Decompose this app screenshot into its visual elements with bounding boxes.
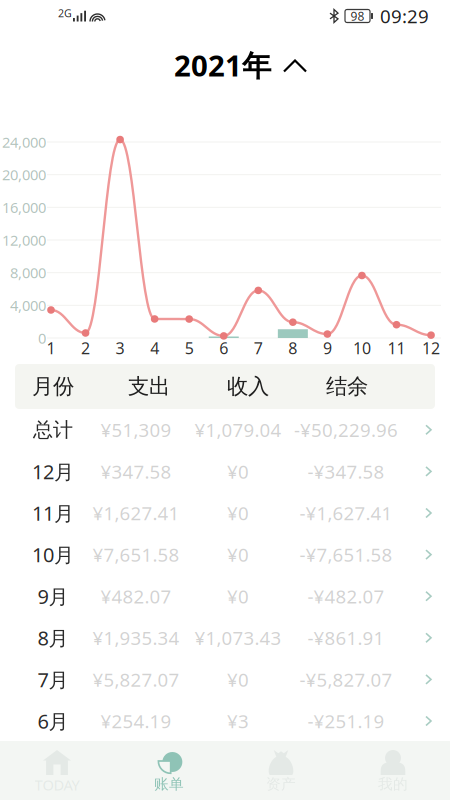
button[interactable]: 6月 bbox=[15, 700, 435, 742]
staticText: ¥0 bbox=[227, 542, 249, 567]
staticText: 总计 bbox=[33, 417, 73, 442]
staticText: 98 bbox=[350, 8, 364, 24]
staticText: 8月 bbox=[37, 624, 68, 651]
staticText: 6 bbox=[219, 337, 228, 359]
staticText: -¥861.91 bbox=[307, 625, 384, 650]
staticText: 11月 bbox=[32, 500, 74, 526]
staticText: ¥1,627.41 bbox=[92, 501, 179, 525]
staticText: 8,000 bbox=[10, 263, 46, 282]
staticText: 4,000 bbox=[10, 296, 46, 315]
staticText: 12 bbox=[422, 337, 440, 359]
staticText: 支出 bbox=[128, 373, 170, 400]
staticText: 结余 bbox=[326, 373, 368, 400]
staticText: 5 bbox=[185, 337, 194, 359]
button[interactable]: 资产 bbox=[225, 741, 337, 800]
staticText: 账单 bbox=[154, 775, 184, 793]
button[interactable]: 我的 bbox=[337, 741, 449, 800]
button[interactable]: 11月 bbox=[15, 492, 435, 534]
staticText: ¥1,935.34 bbox=[92, 625, 179, 650]
staticText: ¥347.58 bbox=[100, 459, 171, 484]
staticText: 7月 bbox=[37, 666, 68, 693]
staticText: ¥482.07 bbox=[100, 584, 171, 609]
staticText: -¥251.19 bbox=[307, 709, 384, 733]
button[interactable]: 10月 bbox=[15, 534, 435, 575]
button[interactable]: TODAY bbox=[1, 741, 113, 800]
staticText: 1 bbox=[46, 337, 55, 359]
staticText: ¥0 bbox=[227, 459, 249, 484]
staticText: 月份 bbox=[32, 373, 74, 400]
button[interactable]: 7月 bbox=[15, 659, 435, 700]
staticText: -¥1,627.41 bbox=[299, 501, 392, 525]
staticText: 资产 bbox=[266, 775, 296, 793]
staticText: 12月 bbox=[32, 458, 74, 485]
staticText: ¥1,079.04 bbox=[194, 417, 281, 442]
staticText: 2G bbox=[58, 6, 72, 20]
staticText: -¥5,827.07 bbox=[299, 667, 392, 692]
staticText: 11 bbox=[387, 337, 405, 359]
staticText: 8 bbox=[288, 337, 297, 359]
staticText: ¥5,827.07 bbox=[92, 667, 179, 692]
staticText: ¥254.19 bbox=[100, 709, 171, 733]
staticText: 20,000 bbox=[2, 165, 46, 184]
button[interactable]: 总计 bbox=[15, 409, 435, 451]
staticText: -¥7,651.58 bbox=[299, 542, 392, 567]
staticText: ¥51,309 bbox=[100, 417, 171, 442]
staticText: -¥347.58 bbox=[307, 459, 384, 484]
staticText: ¥0 bbox=[227, 667, 249, 692]
button[interactable]: 12月 bbox=[15, 451, 435, 492]
staticText: 收入 bbox=[227, 373, 269, 400]
staticText: 9 bbox=[323, 337, 332, 359]
staticText: 09:29 bbox=[380, 4, 429, 28]
staticText: 12,000 bbox=[2, 230, 46, 250]
button[interactable]: 8月 bbox=[15, 617, 435, 659]
staticText: ¥7,651.58 bbox=[92, 542, 179, 567]
staticText: 9月 bbox=[37, 583, 68, 609]
staticText: ¥1,073.43 bbox=[194, 625, 281, 650]
staticText: 6月 bbox=[37, 708, 68, 734]
button[interactable]: 账单 bbox=[113, 741, 225, 800]
staticText: 3 bbox=[116, 337, 125, 359]
staticText: 0 bbox=[38, 328, 46, 348]
staticText: 2 bbox=[81, 337, 90, 359]
staticText: 16,000 bbox=[2, 198, 46, 217]
staticText: 7 bbox=[254, 337, 263, 359]
staticText: ¥3 bbox=[227, 709, 249, 733]
staticText: ¥0 bbox=[227, 584, 249, 609]
staticText: 10月 bbox=[32, 541, 74, 568]
staticText: 24,000 bbox=[2, 132, 46, 152]
staticText: 2021年 bbox=[174, 45, 271, 84]
staticText: 4 bbox=[150, 337, 159, 359]
staticText: -¥482.07 bbox=[307, 584, 384, 609]
staticText: 10 bbox=[353, 337, 371, 359]
button[interactable]: 9月 bbox=[15, 575, 435, 617]
staticText: ¥0 bbox=[227, 501, 249, 525]
staticText: -¥50,229.96 bbox=[294, 417, 398, 442]
staticText: TODAY bbox=[34, 775, 79, 794]
staticText: 我的 bbox=[378, 775, 408, 793]
